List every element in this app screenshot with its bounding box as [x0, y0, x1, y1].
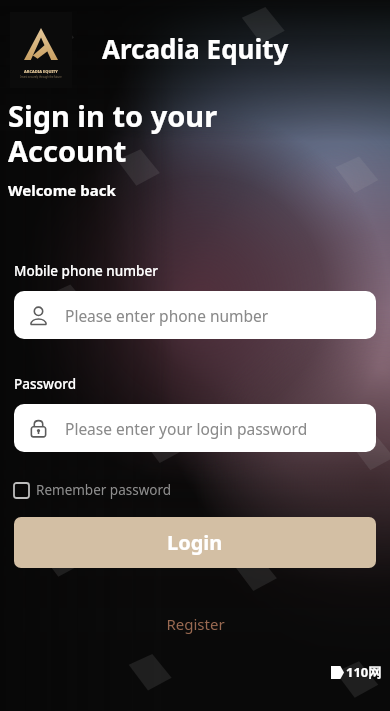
- button[interactable]: Register: [166, 614, 225, 634]
- staticText: Register: [166, 614, 225, 634]
- staticText: Invest securely through the future: [20, 75, 62, 79]
- staticText: Please enter your login password: [65, 418, 308, 439]
- staticText: Remember password: [36, 481, 172, 499]
- staticText: Please enter phone number: [65, 305, 269, 326]
- button[interactable]: Remember password: [14, 481, 172, 499]
- staticText: Sign in to your Account: [8, 96, 218, 171]
- staticText: Password: [14, 375, 77, 393]
- button[interactable]: Login: [14, 517, 376, 568]
- staticText: 110网: [346, 663, 382, 681]
- staticText: Mobile phone number: [14, 262, 158, 280]
- button[interactable]: Please enter your login password: [14, 404, 376, 452]
- staticText: Welcome back: [8, 180, 116, 200]
- staticText: ARCADIA EQUITY: [24, 69, 58, 74]
- staticText: Arcadia Equity: [102, 31, 289, 66]
- staticText: Login: [167, 529, 223, 556]
- button[interactable]: Please enter phone number: [14, 291, 376, 339]
